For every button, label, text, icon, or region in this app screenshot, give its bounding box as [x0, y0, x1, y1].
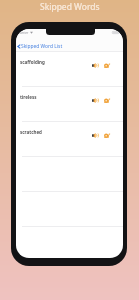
- staticText: Carrier: [18, 31, 29, 35]
- button[interactable]: Play word slowly: [104, 61, 110, 69]
- button[interactable]: Skipped Words: [0, 0, 139, 14]
- button[interactable]: Play word slowly: [104, 96, 110, 104]
- button[interactable]: Play word: [92, 96, 99, 104]
- button[interactable]: Play word slowly: [104, 131, 110, 139]
- button[interactable]: tireless: [16, 87, 123, 122]
- button[interactable]: Skipped Word List: [17, 42, 65, 51]
- button[interactable]: scratched: [16, 122, 123, 157]
- staticText: scaffolding: [20, 59, 45, 65]
- staticText: Skipped Word List: [21, 43, 63, 50]
- button[interactable]: Play word: [92, 61, 99, 69]
- button[interactable]: Play word: [92, 131, 99, 139]
- button[interactable]: scaffolding: [16, 52, 123, 87]
- staticText: tireless: [20, 94, 37, 100]
- staticText: scratched: [20, 129, 42, 135]
- staticText: Skipped Words: [40, 1, 100, 13]
